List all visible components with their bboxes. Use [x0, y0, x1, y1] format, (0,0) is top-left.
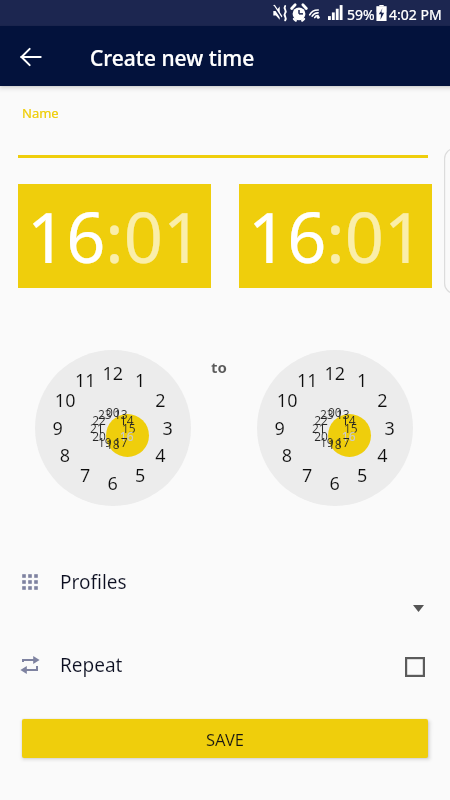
staticText: 16:01 [248, 190, 424, 283]
button[interactable] [257, 350, 413, 506]
staticText: SAVE [206, 728, 245, 750]
button[interactable]: Expand profiles [401, 593, 435, 623]
button[interactable]: Back [10, 36, 51, 77]
staticText: Profiles [60, 569, 127, 595]
button[interactable]: Repeat [0, 642, 450, 688]
staticText: 59% [347, 5, 375, 24]
button[interactable] [35, 350, 191, 506]
button[interactable]: 16:01 [239, 184, 432, 288]
button[interactable]: Profiles [0, 559, 450, 605]
button[interactable]: 16:01 [18, 184, 211, 288]
staticText: 16:01 [27, 190, 203, 283]
staticText: Repeat [60, 652, 123, 678]
staticText: Create new time [90, 44, 255, 73]
staticText: Name [22, 104, 59, 122]
staticText: to [211, 357, 227, 377]
staticText: 4:02 PM [389, 5, 442, 24]
button[interactable]: SAVE [22, 719, 428, 758]
button[interactable]: Repeat toggle [405, 657, 425, 677]
